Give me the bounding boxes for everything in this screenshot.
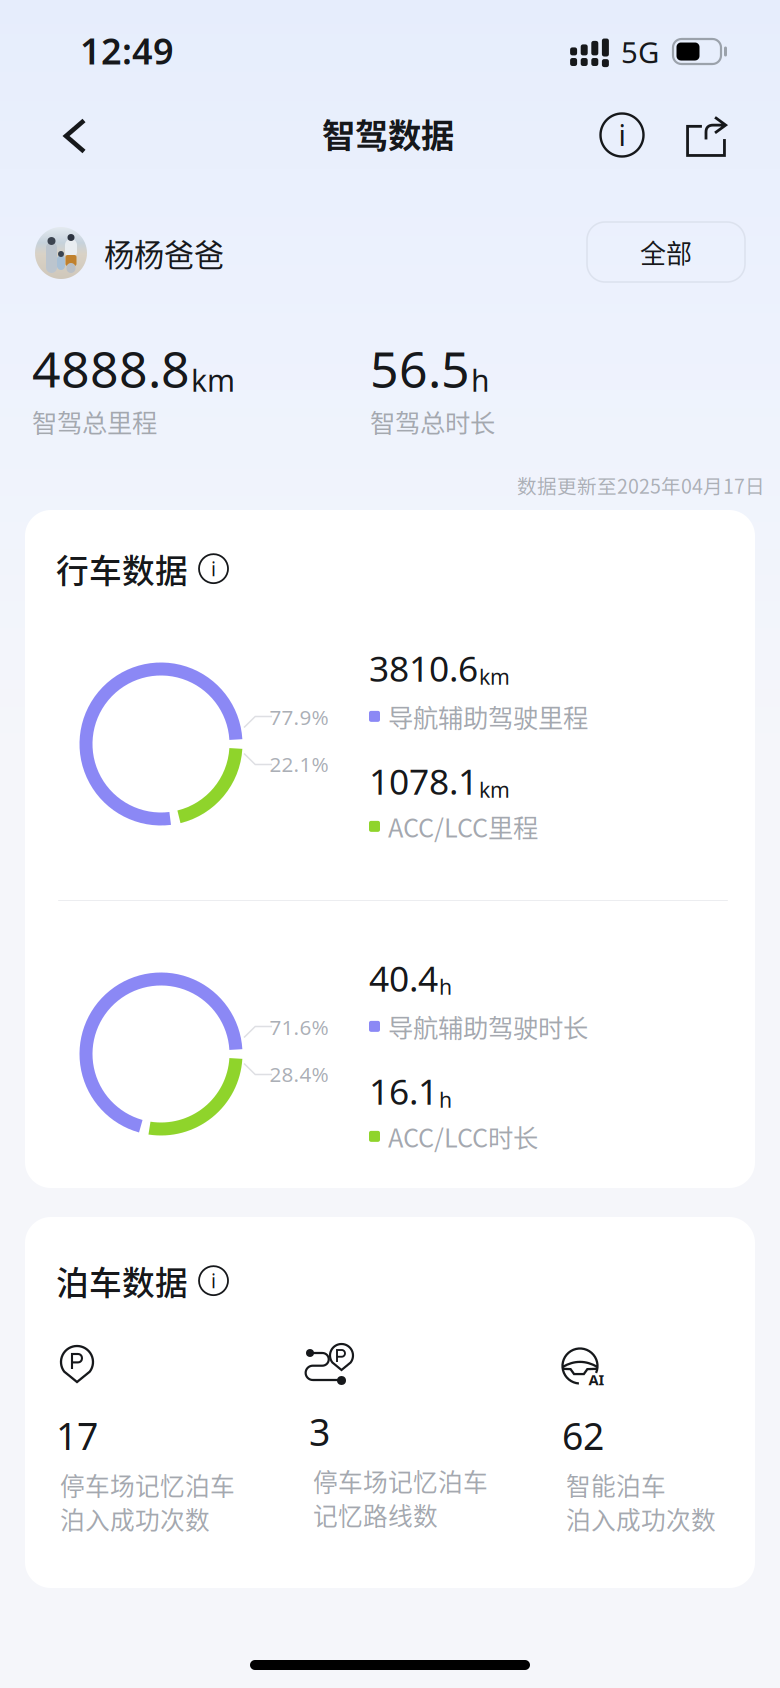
staticText: 智驾数据 [322, 109, 454, 157]
staticText: 77.9% [269, 703, 328, 731]
staticText: 全部 [640, 233, 692, 271]
staticText: 56.5 [370, 334, 470, 402]
staticText: 泊入成功次数 [60, 1501, 210, 1537]
staticText: 智驾总里程 [32, 403, 157, 440]
staticText: 导航辅助驾驶里程 [388, 698, 588, 735]
staticText: 3 [309, 1406, 330, 1457]
staticText: 22.1% [269, 750, 328, 778]
button[interactable]: Info [592, 105, 652, 165]
staticText: 4888.8 [32, 334, 190, 402]
staticText: h [439, 972, 452, 1001]
button[interactable]: 杨杨爸爸 [35, 227, 224, 279]
staticText: 智驾总时长 [370, 403, 495, 440]
staticText: 1078.1 [369, 757, 478, 805]
staticText: 泊车数据 [56, 1257, 188, 1304]
staticText: 3810.6 [369, 644, 478, 692]
staticText: 杨杨爸爸 [104, 231, 224, 275]
staticText: ACC/LCC时长 [388, 1118, 538, 1155]
staticText: km [191, 360, 235, 401]
staticText: i [618, 115, 625, 154]
staticText: 数据更新至2025年04月17日 [517, 471, 765, 499]
staticText: 停车场记忆泊车 [60, 1467, 235, 1503]
staticText: 17 [56, 1410, 98, 1461]
button[interactable]: 全部 [587, 222, 745, 282]
staticText: km [479, 662, 510, 691]
staticText: 记忆路线数 [313, 1497, 438, 1533]
staticText: 停车场记忆泊车 [313, 1463, 488, 1499]
staticText: 5G [621, 32, 659, 72]
staticText: 28.4% [269, 1060, 328, 1088]
staticText: 16.1 [369, 1067, 438, 1115]
staticText: 71.6% [269, 1013, 328, 1041]
staticText: i [211, 555, 216, 582]
staticText: 62 [562, 1410, 604, 1461]
staticText: h [471, 360, 490, 401]
staticText: 40.4 [369, 954, 438, 1002]
staticText: i [211, 1267, 216, 1294]
staticText: 泊入成功次数 [566, 1501, 716, 1537]
staticText: km [479, 775, 510, 804]
button[interactable]: Back [41, 102, 109, 170]
staticText: 12:49 [80, 26, 174, 75]
staticText: 导航辅助驾驶时长 [388, 1008, 588, 1045]
staticText: AI [588, 1369, 604, 1389]
staticText: ACC/LCC里程 [388, 808, 538, 845]
button[interactable]: Share [676, 107, 736, 167]
staticText: 行车数据 [56, 545, 188, 592]
staticText: h [439, 1085, 452, 1114]
staticText: 智能泊车 [566, 1467, 666, 1503]
